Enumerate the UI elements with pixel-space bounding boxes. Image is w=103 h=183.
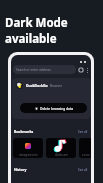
button[interactable]: Delete browsing data	[20, 103, 87, 113]
button[interactable]: x.com	[79, 138, 91, 158]
staticText: DuckDuckGo	[26, 83, 48, 88]
staticText: Bookmarks	[14, 129, 34, 134]
button[interactable]: Tabs	[78, 67, 84, 73]
staticText: Dark Mode	[5, 15, 68, 31]
staticText: History	[14, 167, 27, 172]
staticText: Delete browsing data	[40, 106, 73, 110]
button[interactable]: DuckDuckGo	[16, 82, 62, 89]
staticText: See all	[78, 168, 88, 172]
button[interactable]: tiktok.com	[46, 138, 76, 158]
staticText: tiktok.com	[55, 153, 68, 157]
staticText: x.com	[82, 153, 90, 157]
button[interactable]: See all	[78, 130, 88, 134]
button[interactable]: Search or enter address	[13, 65, 76, 74]
staticText: available	[5, 31, 57, 47]
button[interactable]: See all	[78, 168, 88, 172]
button[interactable]: instagram.com	[13, 138, 43, 158]
staticText: instagram.com	[19, 153, 38, 157]
staticText: See all	[78, 130, 88, 134]
staticText: Search or enter address	[16, 68, 51, 72]
staticText: Browser	[50, 84, 62, 88]
button[interactable]: Menu	[84, 67, 90, 73]
